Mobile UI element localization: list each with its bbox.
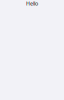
staticText: Hello [26, 0, 38, 7]
